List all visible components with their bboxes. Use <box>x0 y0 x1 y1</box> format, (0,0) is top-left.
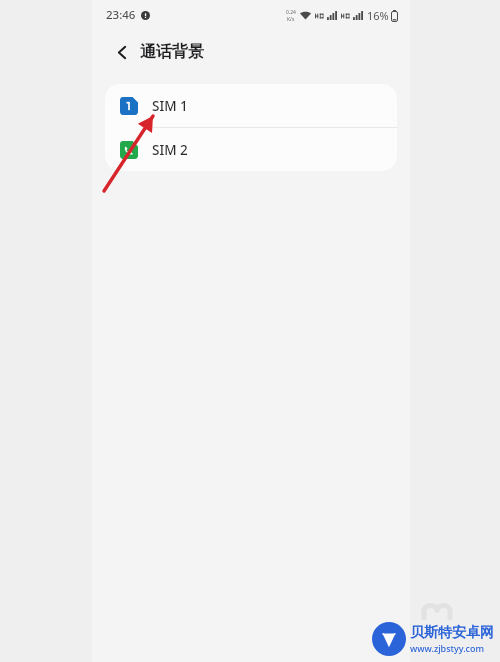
staticText: 23:46 <box>106 7 136 23</box>
staticText: 16% <box>367 8 389 23</box>
staticText: 贝斯特安卓网 <box>410 624 494 642</box>
staticText: www.zjbstyy.com <box>410 642 485 654</box>
staticText: 0.24 <box>286 9 296 16</box>
button[interactable]: Back <box>108 38 136 66</box>
staticText: K/s <box>287 16 295 23</box>
staticText: 通话背景 <box>140 42 204 62</box>
staticText: SIM 1 <box>152 97 188 115</box>
staticText: SIM 2 <box>152 141 188 159</box>
button[interactable]: SIM 1 <box>105 84 397 127</box>
button[interactable]: SIM 2 <box>105 128 397 171</box>
